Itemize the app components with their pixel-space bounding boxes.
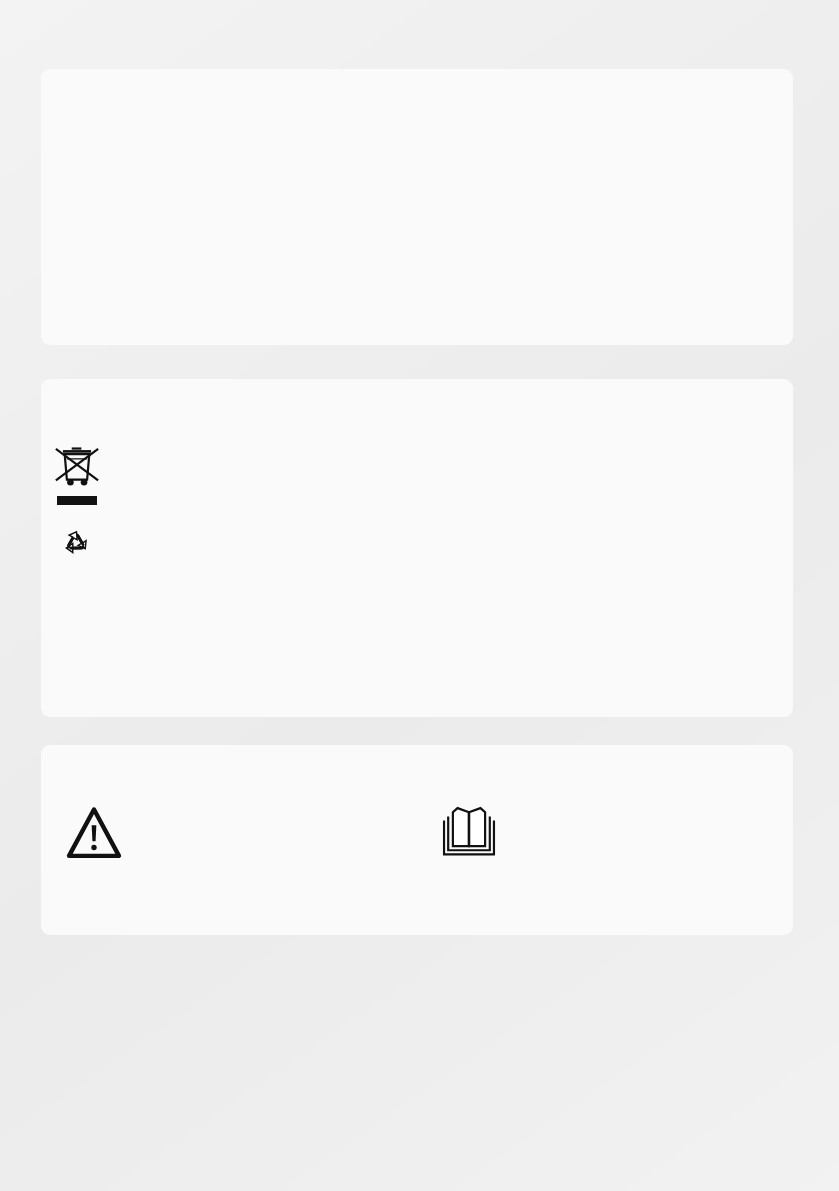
button[interactable]: Do not dispose in household waste: [41, 379, 793, 717]
button[interactable]: Read the instruction manual: [443, 805, 495, 857]
button[interactable]: Do not dispose in household waste: [55, 447, 99, 491]
button[interactable]: Warning: [41, 745, 793, 935]
button[interactable]: Warning: [68, 808, 120, 860]
button[interactable]: Recyclable: [55, 521, 97, 563]
